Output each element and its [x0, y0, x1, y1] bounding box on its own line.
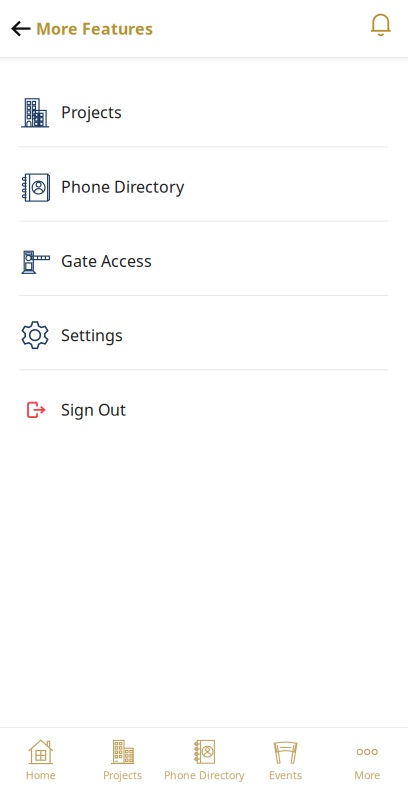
button[interactable]: Events — [245, 728, 326, 800]
staticText: Sign Out — [61, 399, 126, 420]
staticText: Phone Directory — [164, 768, 244, 782]
button[interactable]: Back — [0, 0, 36, 57]
button[interactable]: Phone Directory — [163, 728, 245, 800]
button[interactable]: Sign Out — [0, 370, 408, 444]
staticText: Settings — [61, 324, 123, 346]
button[interactable]: Phone Directory — [0, 147, 408, 221]
button[interactable]: More — [326, 728, 408, 800]
button[interactable]: Home — [0, 728, 82, 800]
staticText: More Features — [36, 18, 153, 39]
button[interactable]: Projects — [82, 728, 163, 800]
staticText: Projects — [61, 101, 122, 123]
button[interactable]: Notifications — [358, 0, 408, 57]
staticText: Gate Access — [61, 250, 152, 271]
staticText: More — [354, 768, 380, 782]
staticText: Projects — [103, 768, 142, 782]
button[interactable]: More Features — [36, 0, 153, 57]
button[interactable]: Gate Access — [0, 222, 408, 295]
staticText: Events — [269, 768, 302, 782]
button[interactable]: Settings — [0, 296, 408, 369]
button[interactable]: Projects — [0, 73, 408, 146]
staticText: Home — [26, 768, 56, 782]
staticText: Phone Directory — [61, 176, 184, 197]
